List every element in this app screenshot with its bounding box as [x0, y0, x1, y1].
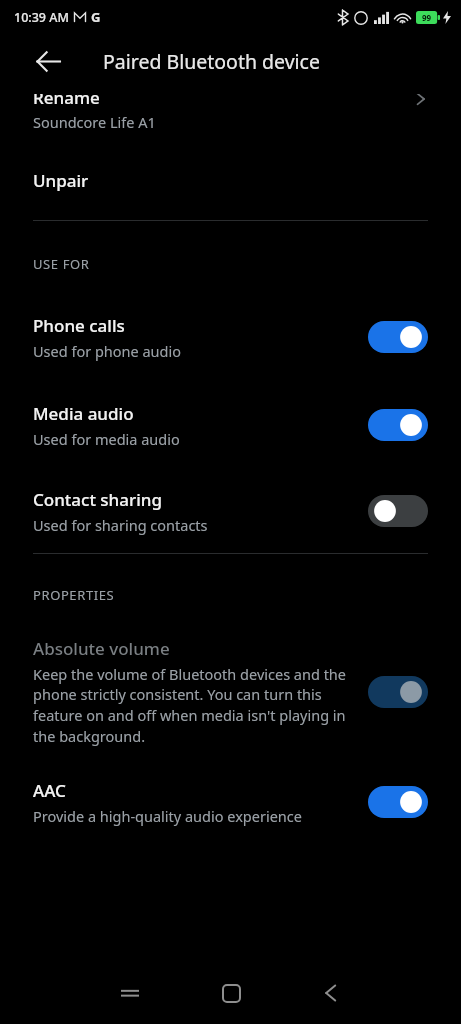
- staticText: Provide a high-quality audio experience: [33, 806, 333, 826]
- button[interactable]: Back: [309, 971, 353, 1015]
- button[interactable]: Phone calls: [0, 293, 461, 381]
- staticText: Rename: [33, 94, 100, 109]
- staticText: Unpair: [33, 169, 89, 192]
- button[interactable]: Media audio: [0, 381, 461, 469]
- button[interactable]: Unpair: [0, 140, 461, 220]
- staticText: Used for phone audio: [33, 341, 333, 361]
- button[interactable]: Recent apps: [108, 971, 152, 1015]
- button[interactable]: Back: [26, 39, 70, 83]
- button[interactable]: Rename: [0, 94, 461, 140]
- staticText: Contact sharing: [33, 488, 162, 511]
- button[interactable]: Contact sharing: [0, 469, 461, 553]
- button[interactable]: Absolute volume: [0, 624, 461, 759]
- staticText: Absolute volume: [33, 637, 170, 660]
- button[interactable]: Toggle: [368, 786, 428, 818]
- staticText: Keep the volume of Bluetooth devices and…: [33, 664, 348, 747]
- staticText: Used for media audio: [33, 429, 333, 449]
- staticText: Soundcore Life A1: [33, 112, 156, 132]
- staticText: AAC: [33, 779, 66, 802]
- staticText: G: [91, 8, 101, 26]
- button[interactable]: Home: [209, 971, 253, 1015]
- staticText: Phone calls: [33, 314, 125, 337]
- staticText: 10:39 AM: [14, 9, 69, 26]
- button[interactable]: Toggle: [368, 495, 428, 527]
- button[interactable]: AAC: [0, 759, 461, 845]
- button[interactable]: Toggle: [368, 409, 428, 441]
- staticText: 99: [422, 12, 432, 23]
- staticText: PROPERTIES: [33, 586, 115, 604]
- button[interactable]: Toggle: [368, 676, 428, 708]
- staticText: USE FOR: [33, 255, 90, 273]
- staticText: Used for sharing contacts: [33, 515, 333, 535]
- staticText: Paired Bluetooth device: [103, 48, 320, 75]
- staticText: Media audio: [33, 402, 134, 425]
- button[interactable]: Toggle: [368, 321, 428, 353]
